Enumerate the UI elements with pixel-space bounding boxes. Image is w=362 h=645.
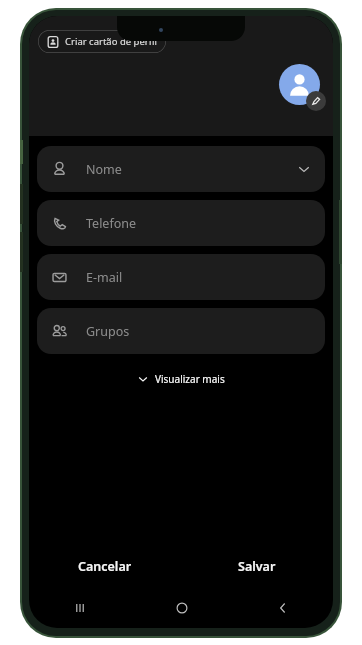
staticText: E-mail [86,269,123,286]
button[interactable]: E-mail [37,254,325,300]
button[interactable]: Recentes [29,592,131,624]
staticText: Nome [86,161,122,178]
button[interactable]: Voltar [232,592,333,624]
staticText: Visualizar mais [155,372,225,386]
button[interactable]: Início [131,592,232,624]
button[interactable]: Visualizar mais [127,368,235,390]
staticText: Cancelar [78,558,132,575]
staticText: Criar cartão de perfil [65,35,157,48]
button[interactable]: Editar foto do perfil [279,64,326,111]
button[interactable]: Grupos [37,308,325,354]
button[interactable]: Telefone [37,200,325,246]
staticText: Grupos [86,323,130,340]
button[interactable]: Cancelar [29,548,181,584]
button[interactable]: Criar cartão de perfil [38,30,166,53]
button[interactable]: Salvar [181,548,333,584]
staticText: Salvar [238,558,276,575]
staticText: Telefone [86,215,137,232]
button[interactable]: Nome [37,146,325,192]
